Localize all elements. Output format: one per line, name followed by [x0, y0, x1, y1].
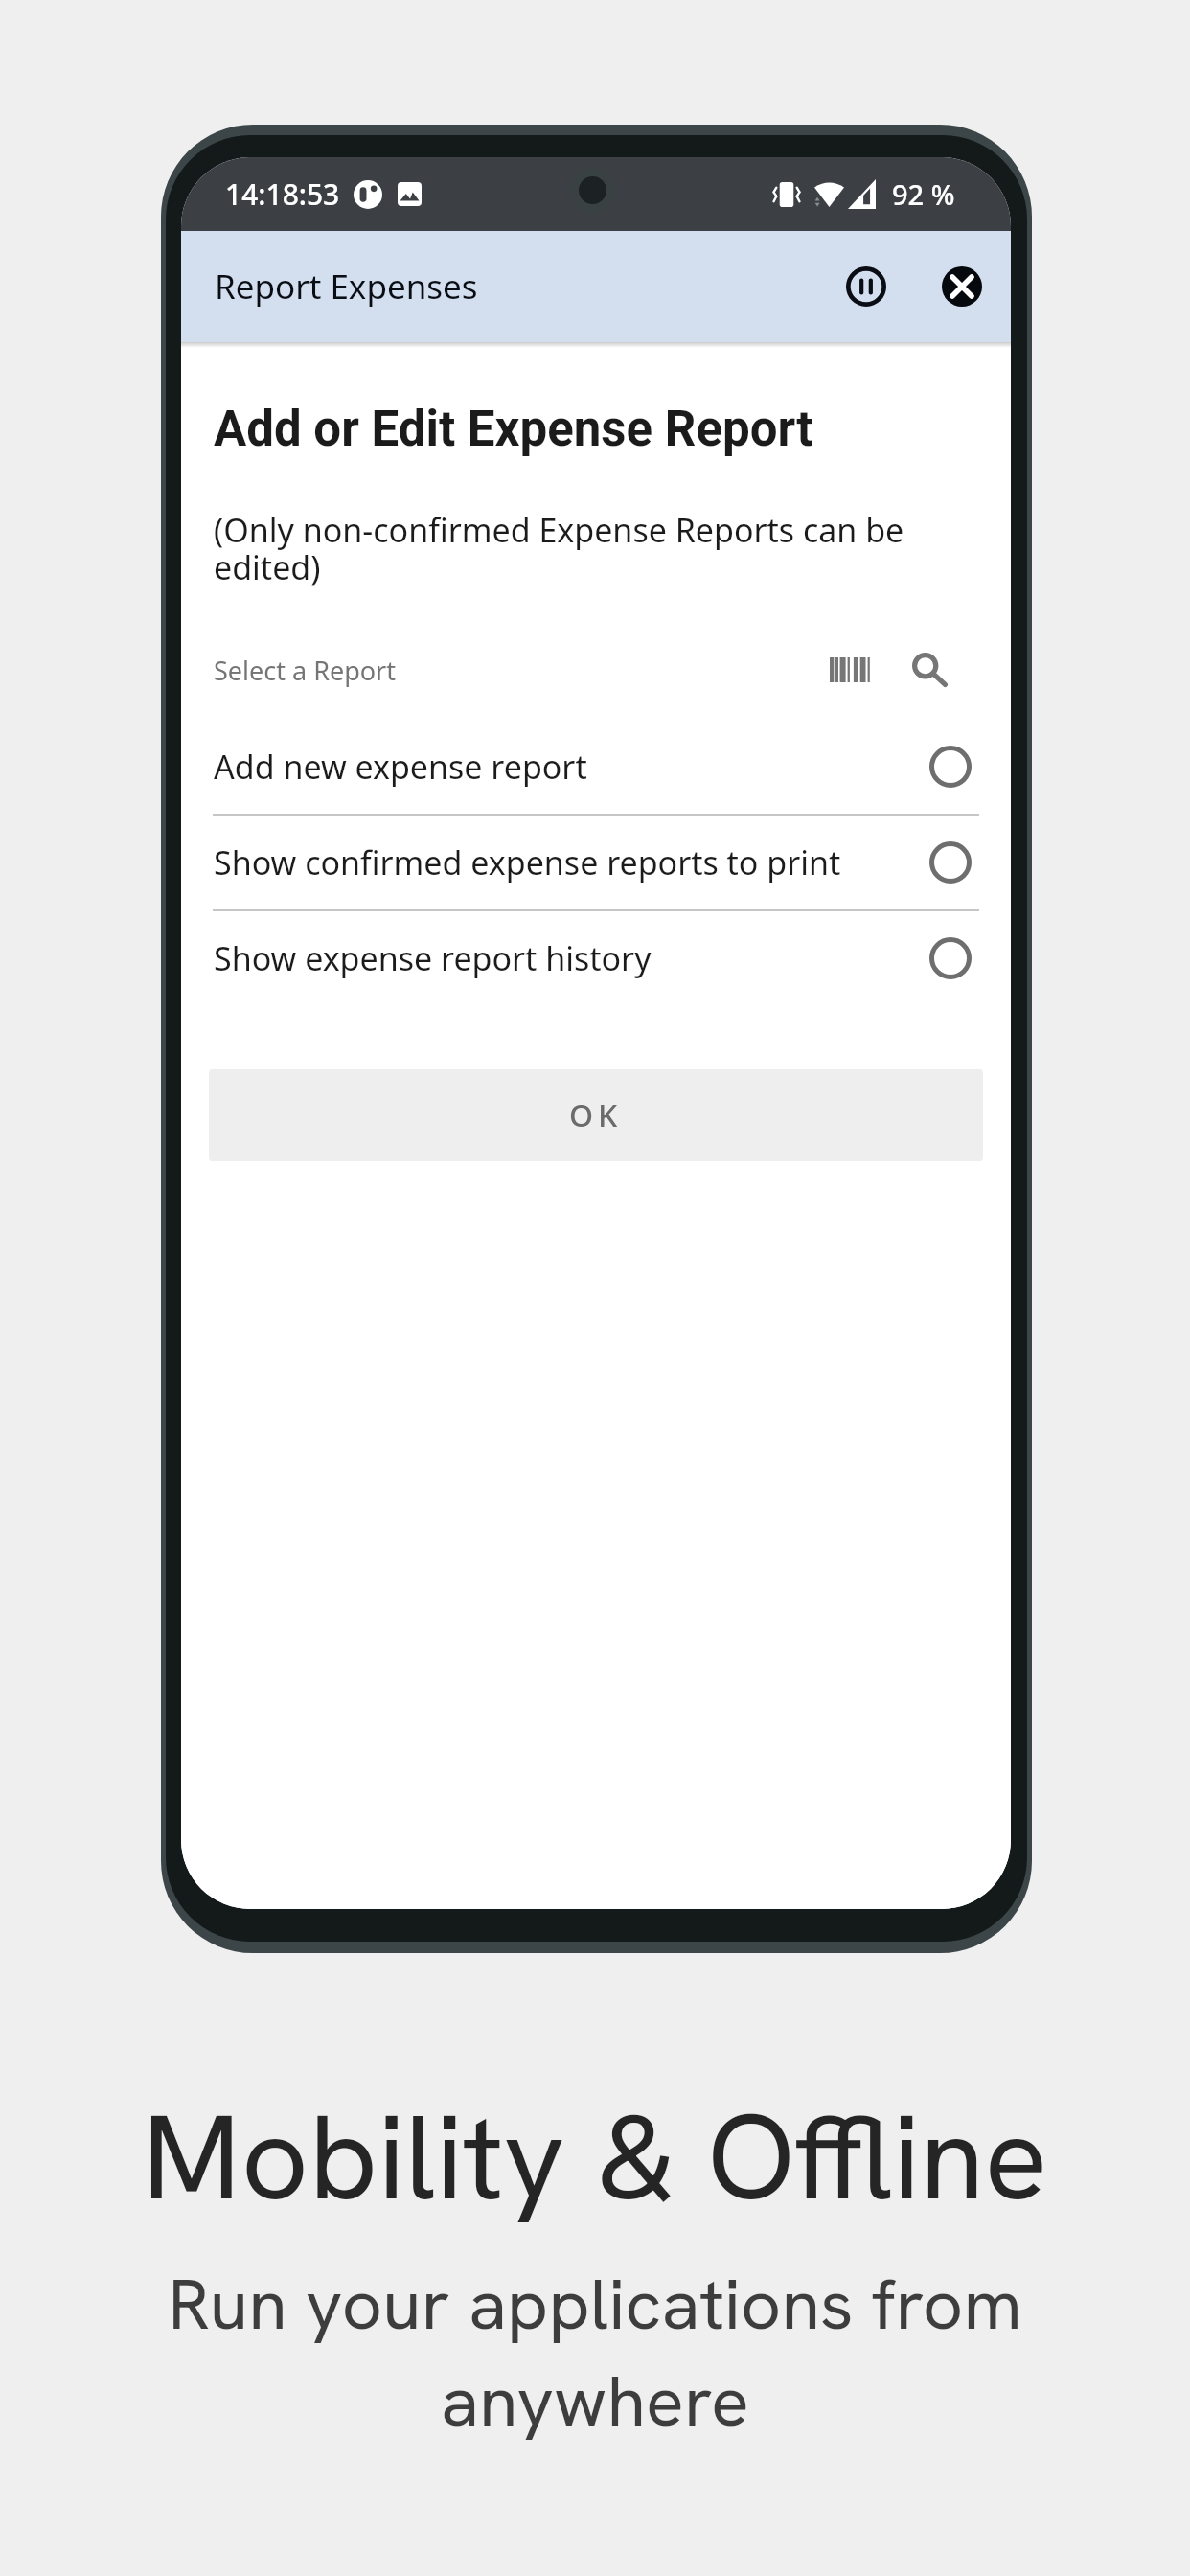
staticText: OK [569, 1094, 623, 1137]
staticText: Mobility & Offline [142, 2081, 1048, 2234]
button[interactable]: Show expense report history [209, 911, 983, 1005]
button[interactable]: Add new expense report [209, 720, 983, 814]
button[interactable]: Pause [832, 252, 901, 321]
staticText: 14:18:53 [225, 174, 340, 214]
button[interactable]: Close [927, 252, 996, 321]
staticText: Show confirmed expense reports to print [214, 840, 841, 885]
staticText: Select a Report [214, 653, 396, 688]
staticText: Report Expenses [215, 264, 478, 310]
button[interactable]: Search [903, 643, 956, 697]
staticText: Show expense report history [214, 936, 652, 980]
staticText: Add new expense report [214, 745, 587, 789]
staticText: Add or Edit Expense Report [214, 401, 813, 458]
staticText: Run your applications from anywhere [168, 2258, 1022, 2447]
button[interactable]: OK [209, 1069, 983, 1161]
button[interactable]: Show confirmed expense reports to print [209, 816, 983, 909]
staticText: 92 % [892, 175, 955, 213]
button[interactable]: Scan barcode [821, 643, 879, 697]
staticText: (Only non-confirmed Expense Reports can … [214, 508, 983, 589]
